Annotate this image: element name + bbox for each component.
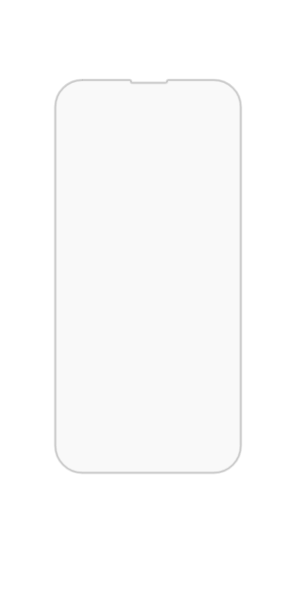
- button[interactable]: Screen protector product image: [0, 0, 304, 600]
